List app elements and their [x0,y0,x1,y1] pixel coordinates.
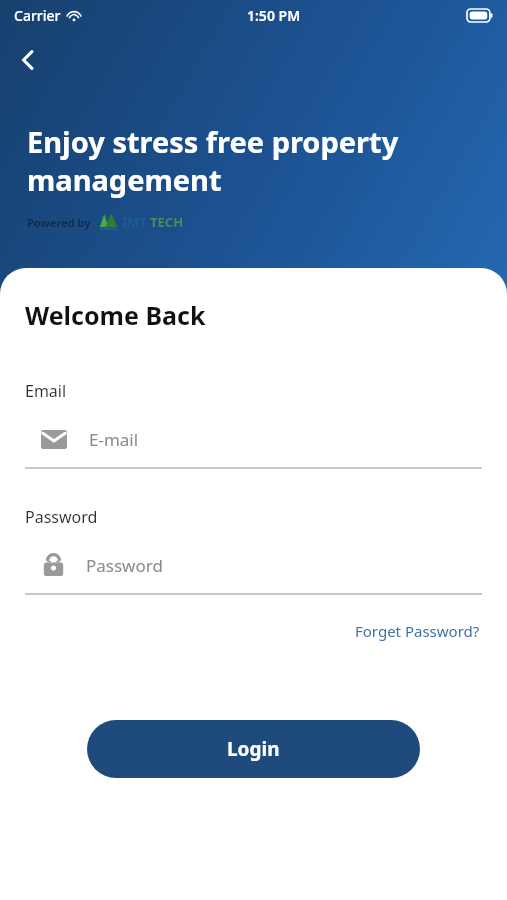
button[interactable]: Login [87,720,420,778]
staticText: Forget Password? [355,621,480,641]
staticText: Password [25,506,98,528]
staticText: E-mail [89,428,139,451]
button[interactable]: Forget Password? [353,615,482,647]
staticText: 1:50 PM [247,6,301,25]
staticText: Powered by [27,215,91,230]
button[interactable]: Back [6,38,50,82]
staticText: Email [25,380,67,402]
staticText: IMT [122,213,147,231]
staticText: TECH [150,213,184,231]
staticText: Enjoy stress free property management [27,122,477,199]
button[interactable]: Password [25,546,482,584]
button[interactable]: E-mail [25,420,482,458]
staticText: Password [86,554,163,577]
staticText: Login [227,736,280,762]
staticText: Welcome Back [25,298,206,332]
staticText: Carrier [14,6,61,25]
